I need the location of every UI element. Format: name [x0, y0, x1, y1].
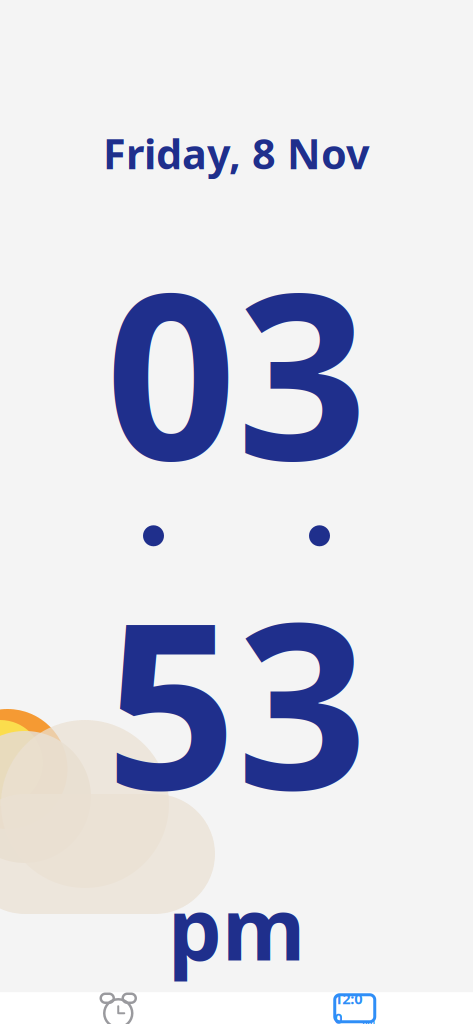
- staticText: 53: [105, 548, 367, 853]
- staticText: 03: [105, 219, 367, 523]
- button[interactable]: 12:00: [236, 986, 473, 1024]
- staticText: pm: [168, 871, 305, 984]
- button[interactable]: Alarm: [0, 986, 236, 1024]
- staticText: Friday, 8 Nov: [103, 126, 370, 181]
- staticText: pm: [362, 1017, 375, 1024]
- staticText: 12:00: [334, 989, 362, 1024]
